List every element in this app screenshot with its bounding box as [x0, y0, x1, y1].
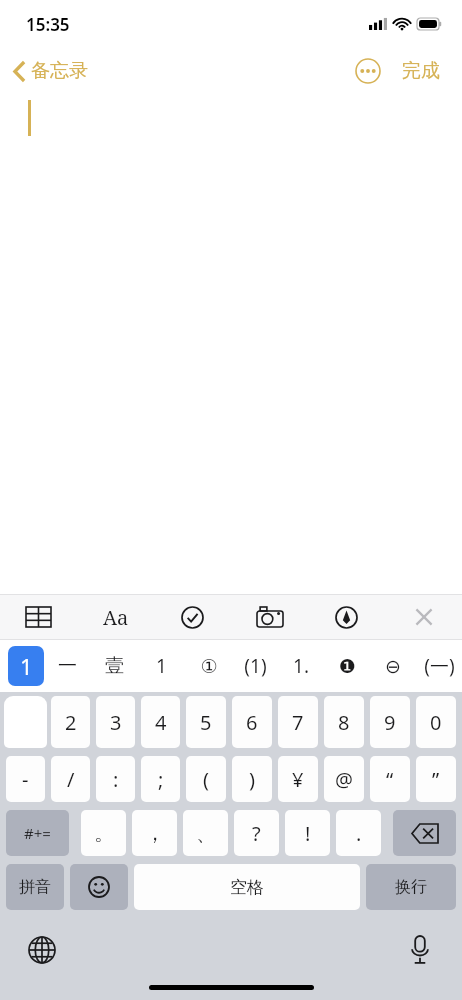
staticText: ” — [432, 766, 440, 793]
button[interactable]: Camera — [231, 595, 308, 639]
button[interactable]: ( — [186, 756, 226, 802]
button[interactable]: Close — [385, 595, 462, 639]
staticText: 0 — [430, 709, 442, 736]
button[interactable]: Backspace — [393, 810, 456, 856]
staticText: (1) — [244, 653, 267, 679]
button[interactable]: 1 — [138, 640, 185, 692]
staticText: 15:35 — [26, 13, 70, 36]
staticText: 1 — [156, 653, 167, 679]
staticText: 换行 — [395, 877, 427, 897]
button[interactable]: Table — [0, 595, 77, 639]
staticText: : — [113, 766, 119, 793]
staticText: @ — [335, 766, 353, 793]
button[interactable]: 1. — [278, 640, 324, 692]
staticText: 、 — [196, 821, 216, 846]
staticText: 9 — [384, 709, 396, 736]
button[interactable]: 1 — [8, 646, 44, 686]
button[interactable]: 2 — [51, 696, 90, 748]
button[interactable]: 。 — [81, 810, 126, 856]
staticText: 3 — [110, 709, 122, 736]
staticText: - — [22, 766, 29, 793]
button[interactable]: 4 — [141, 696, 180, 748]
button[interactable]: 9 — [370, 696, 410, 748]
button[interactable]: Dictation — [400, 930, 440, 970]
button[interactable]: 6 — [232, 696, 272, 748]
staticText: 。 — [94, 821, 114, 846]
button[interactable]: - — [6, 756, 45, 802]
button[interactable]: “ — [370, 756, 410, 802]
button[interactable]: ❶ — [324, 640, 370, 692]
button[interactable]: ) — [232, 756, 272, 802]
staticText: 1 — [20, 651, 33, 681]
staticText: 壹 — [105, 654, 124, 678]
button[interactable]: 壹 — [91, 640, 138, 692]
staticText: 7 — [292, 709, 304, 736]
staticText: ) — [249, 766, 255, 793]
button[interactable]: 3 — [96, 696, 135, 748]
staticText: 8 — [338, 709, 350, 736]
staticText: ① — [200, 655, 218, 677]
button[interactable]: @ — [324, 756, 364, 802]
button[interactable]: (1) — [232, 640, 278, 692]
staticText: 6 — [246, 709, 258, 736]
staticText: ( — [203, 766, 209, 793]
button[interactable]: 备忘录 — [0, 53, 98, 89]
button[interactable]: (一) — [416, 640, 462, 692]
button[interactable]: ， — [132, 810, 177, 856]
button[interactable]: Text format — [77, 595, 154, 639]
button[interactable]: ? — [234, 810, 279, 856]
staticText: 完成 — [402, 59, 440, 83]
staticText: 5 — [200, 709, 212, 736]
staticText: 2 — [65, 709, 77, 736]
button[interactable]: Markup — [308, 595, 385, 639]
staticText: Aa — [103, 604, 129, 631]
button[interactable]: 7 — [278, 696, 318, 748]
button[interactable]: . — [336, 810, 381, 856]
button[interactable]: 1 — [4, 696, 47, 748]
button[interactable]: Emoji — [70, 864, 128, 910]
staticText: ❶ — [338, 655, 356, 677]
button[interactable]: 、 — [183, 810, 228, 856]
staticText: 空格 — [230, 877, 264, 898]
staticText: ! — [305, 820, 311, 847]
staticText: 4 — [155, 709, 167, 736]
staticText: 1. — [293, 653, 309, 679]
button[interactable]: #+= — [6, 810, 69, 856]
button[interactable]: 0 — [416, 696, 456, 748]
button[interactable]: 完成 — [398, 53, 444, 89]
button[interactable]: 空格 — [134, 864, 360, 910]
staticText: #+= — [24, 823, 51, 843]
staticText: ， — [145, 821, 165, 846]
staticText: ¥ — [292, 766, 304, 793]
button[interactable]: 拼音 — [6, 864, 64, 910]
staticText: 备忘录 — [31, 59, 88, 83]
button[interactable]: / — [51, 756, 90, 802]
button[interactable]: 5 — [186, 696, 226, 748]
button[interactable]: ① — [185, 640, 232, 692]
staticText: 拼音 — [19, 877, 51, 897]
button[interactable]: Checklist — [154, 595, 231, 639]
button[interactable]: More options — [352, 55, 384, 87]
button[interactable]: ” — [416, 756, 456, 802]
button[interactable]: ⊖ — [370, 640, 416, 692]
staticText: ; — [158, 766, 164, 793]
button[interactable]: ¥ — [278, 756, 318, 802]
staticText: 一 — [58, 654, 77, 678]
button[interactable]: ! — [285, 810, 330, 856]
staticText: . — [356, 820, 362, 847]
button[interactable]: 换行 — [366, 864, 456, 910]
button[interactable]: 8 — [324, 696, 364, 748]
button[interactable]: Switch keyboard — [22, 930, 62, 970]
staticText: “ — [386, 766, 394, 793]
button[interactable]: ; — [141, 756, 180, 802]
staticText: (一) — [424, 653, 455, 679]
staticText: ⊖ — [385, 655, 401, 677]
staticText: / — [67, 766, 75, 793]
button[interactable]: : — [96, 756, 135, 802]
button[interactable]: 一 — [44, 640, 91, 692]
staticText: ? — [252, 820, 261, 847]
